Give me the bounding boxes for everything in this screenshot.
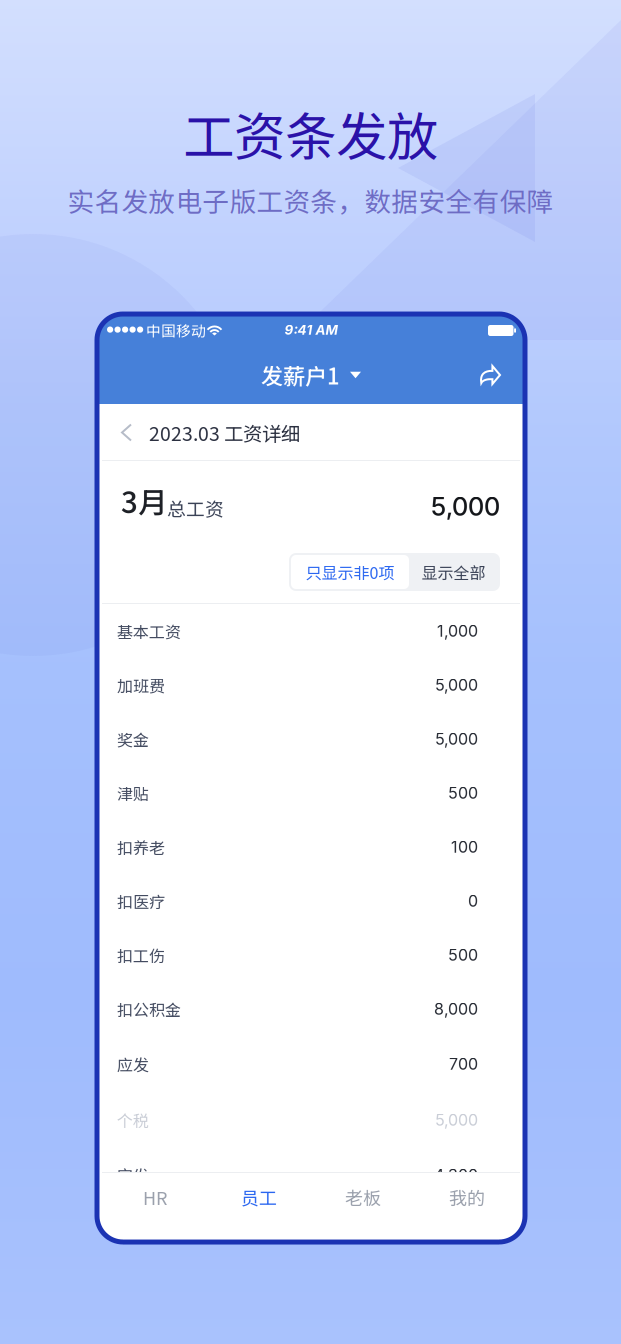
staticText: 3月 — [121, 479, 167, 522]
staticText: 总工资 — [167, 495, 224, 522]
staticText: 扣工伤 — [117, 943, 165, 967]
button[interactable]: 员工 — [207, 1172, 311, 1242]
staticText: 工资条发放 — [183, 96, 438, 170]
staticText: 4,300 — [434, 1165, 478, 1185]
button[interactable]: Share — [467, 353, 513, 397]
staticText: 奖金 — [117, 727, 149, 751]
staticText: 5,000 — [435, 729, 478, 749]
button[interactable]: 发薪户1 — [261, 353, 361, 397]
staticText: 扣医疗 — [117, 889, 165, 913]
staticText: 只显示非0项 — [305, 560, 394, 584]
staticText: 加班费 — [117, 673, 165, 697]
button[interactable]: 津贴 — [102, 766, 520, 820]
staticText: 5,000 — [435, 1110, 478, 1130]
staticText: 0 — [468, 891, 478, 911]
button[interactable]: 奖金 — [102, 712, 520, 766]
staticText: 老板 — [345, 1184, 381, 1210]
staticText: 扣养老 — [117, 835, 165, 859]
button[interactable]: 显示全部 — [409, 555, 498, 589]
staticText: 700 — [449, 1054, 478, 1074]
staticText: 应发 — [117, 1052, 149, 1076]
button[interactable]: 扣工伤 — [102, 928, 520, 982]
button[interactable]: 实发 — [102, 1148, 520, 1202]
button[interactable]: 基本工资 — [102, 604, 520, 658]
staticText: 5,000 — [431, 491, 500, 522]
staticText: 500 — [448, 783, 478, 803]
staticText: 津贴 — [117, 781, 149, 805]
staticText: 8,000 — [434, 999, 478, 1019]
button[interactable]: 应发 — [102, 1036, 520, 1092]
staticText: 500 — [448, 945, 478, 965]
staticText: 5,000 — [435, 675, 478, 695]
button[interactable]: HR — [103, 1172, 207, 1242]
button[interactable]: 个税 — [102, 1092, 520, 1148]
staticText: 实名发放电子版工资条，数据安全有保障 — [67, 181, 553, 219]
button[interactable]: 我的 — [415, 1172, 519, 1242]
staticText: 100 — [451, 837, 478, 857]
button[interactable]: 只显示非0项 — [291, 555, 409, 589]
staticText: 基本工资 — [117, 619, 181, 643]
button[interactable]: 扣养老 — [102, 820, 520, 874]
staticText: 1,000 — [437, 621, 478, 641]
button[interactable]: 老板 — [311, 1172, 415, 1242]
staticText: 个税 — [117, 1108, 149, 1132]
staticText: 员工 — [241, 1184, 277, 1210]
button[interactable]: 扣公积金 — [102, 982, 520, 1036]
staticText: 显示全部 — [421, 560, 485, 584]
button[interactable]: 2023.03 工资详细 — [102, 404, 520, 461]
staticText: 中国移动 — [146, 319, 206, 341]
button[interactable]: 扣医疗 — [102, 874, 520, 928]
staticText: HR — [143, 1184, 167, 1210]
staticText: 2023.03 工资详细 — [149, 418, 300, 446]
staticText: 扣公积金 — [117, 997, 181, 1021]
staticText: 发薪户1 — [261, 359, 340, 391]
staticText: 实发 — [117, 1163, 149, 1187]
staticText: 9:41 AM — [284, 322, 337, 338]
staticText: 我的 — [449, 1184, 485, 1210]
button[interactable]: 加班费 — [102, 658, 520, 712]
